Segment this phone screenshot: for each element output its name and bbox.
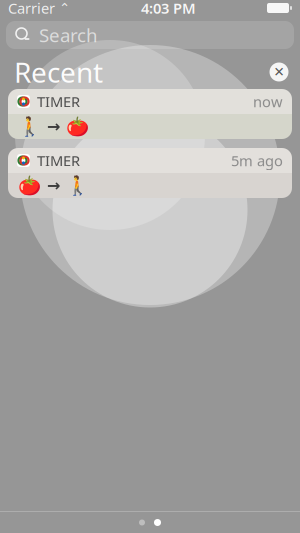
staticText: → [47,117,60,136]
staticText: now [253,92,283,111]
button[interactable]: TIMER [8,148,292,198]
staticText: 4:03 PM [141,0,196,18]
staticText: 🚶 [18,116,41,137]
staticText: TIMER [37,92,80,111]
staticText: TIMER [37,151,80,170]
staticText: 🍅 [66,116,89,137]
staticText: → [47,176,60,195]
staticText: Recent [14,53,103,91]
staticText: ⌃ [55,0,70,15]
staticText: Search [39,23,98,47]
staticText: 🚶 [66,175,89,196]
staticText: 5m ago [231,151,283,170]
button[interactable]: Close [264,57,294,87]
staticText: ✕ [273,64,284,79]
staticText: Carrier [8,0,55,18]
button[interactable]: Search [6,21,294,49]
staticText: 🍅 [18,175,41,196]
button[interactable]: TIMER [8,89,292,139]
